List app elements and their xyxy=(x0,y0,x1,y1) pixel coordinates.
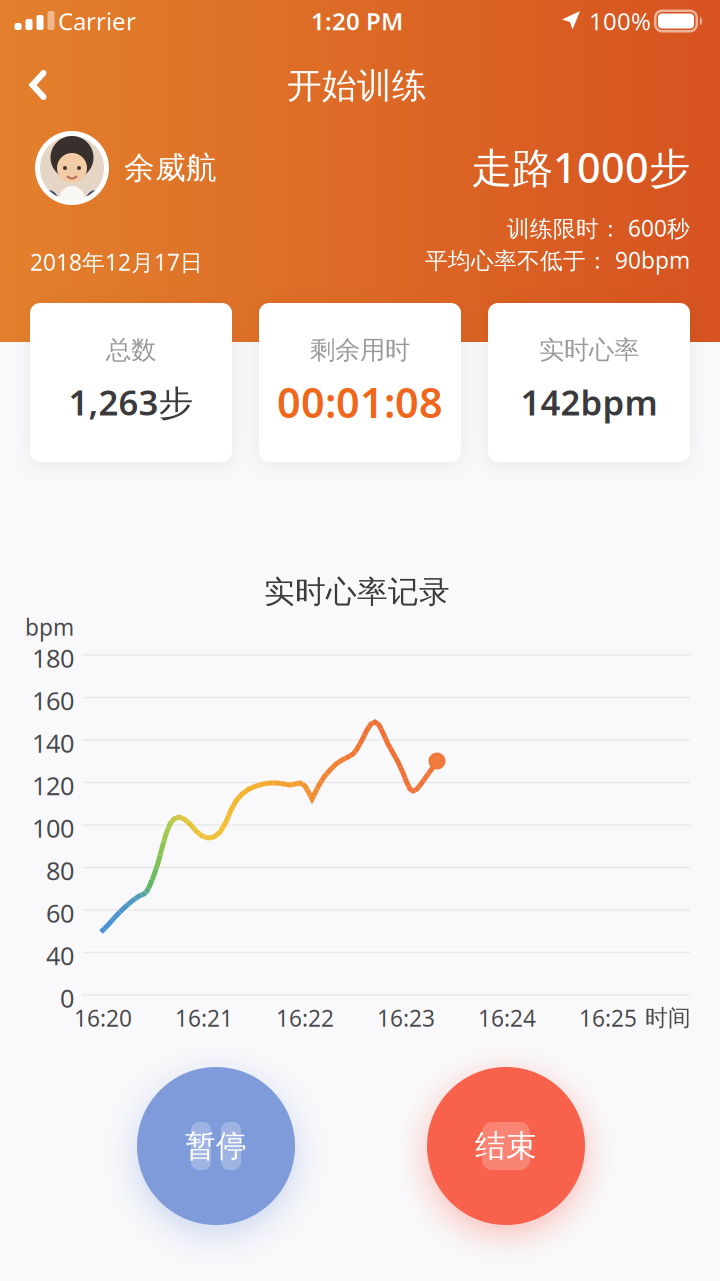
staticText: 140 xyxy=(32,726,74,760)
staticText: bpm xyxy=(25,612,74,642)
staticText: 16:24 xyxy=(478,1003,536,1033)
staticText: 暂停 xyxy=(185,1127,247,1165)
staticText: 余威航 xyxy=(124,149,217,187)
staticText: 40 xyxy=(46,939,74,972)
staticText: 实时心率 xyxy=(539,334,639,365)
staticText: 2018年12月17日 xyxy=(30,247,203,277)
staticText: 实时心率记录 xyxy=(264,573,450,611)
button[interactable]: 结束 xyxy=(427,1067,585,1225)
staticText: 16:25 xyxy=(579,1003,637,1033)
staticText: 160 xyxy=(32,684,74,717)
staticText: 走路1000步 xyxy=(471,140,690,194)
staticText: Carrier xyxy=(58,5,136,37)
staticText: 开始训练 xyxy=(287,65,427,107)
staticText: 60 xyxy=(46,896,74,930)
staticText: 16:21 xyxy=(175,1003,233,1033)
staticText: 剩余用时 xyxy=(310,334,410,365)
staticText: 时间 xyxy=(645,1004,691,1032)
staticText: 16:22 xyxy=(276,1003,334,1033)
staticText: 142bpm xyxy=(520,379,657,425)
staticText: 16:23 xyxy=(377,1003,435,1033)
staticText: 1,263步 xyxy=(68,379,193,425)
staticText: 总数 xyxy=(106,334,156,365)
staticText: 100% xyxy=(589,5,651,37)
staticText: 100 xyxy=(32,811,74,845)
staticText: 80 xyxy=(46,854,74,887)
staticText: 结束 xyxy=(475,1127,537,1165)
staticText: 00:01:08 xyxy=(277,375,443,429)
staticText: 1:20 PM xyxy=(311,5,403,37)
staticText: 16:20 xyxy=(74,1003,132,1033)
staticText: 平均心率不低于： 90bpm xyxy=(425,245,690,275)
button[interactable]: 暂停 xyxy=(137,1067,295,1225)
staticText: 120 xyxy=(32,769,74,802)
staticText: 180 xyxy=(32,641,74,675)
staticText: 0 xyxy=(60,981,74,1015)
staticText: 训练限时： 600秒 xyxy=(507,213,690,243)
button[interactable]: Back xyxy=(14,62,61,108)
